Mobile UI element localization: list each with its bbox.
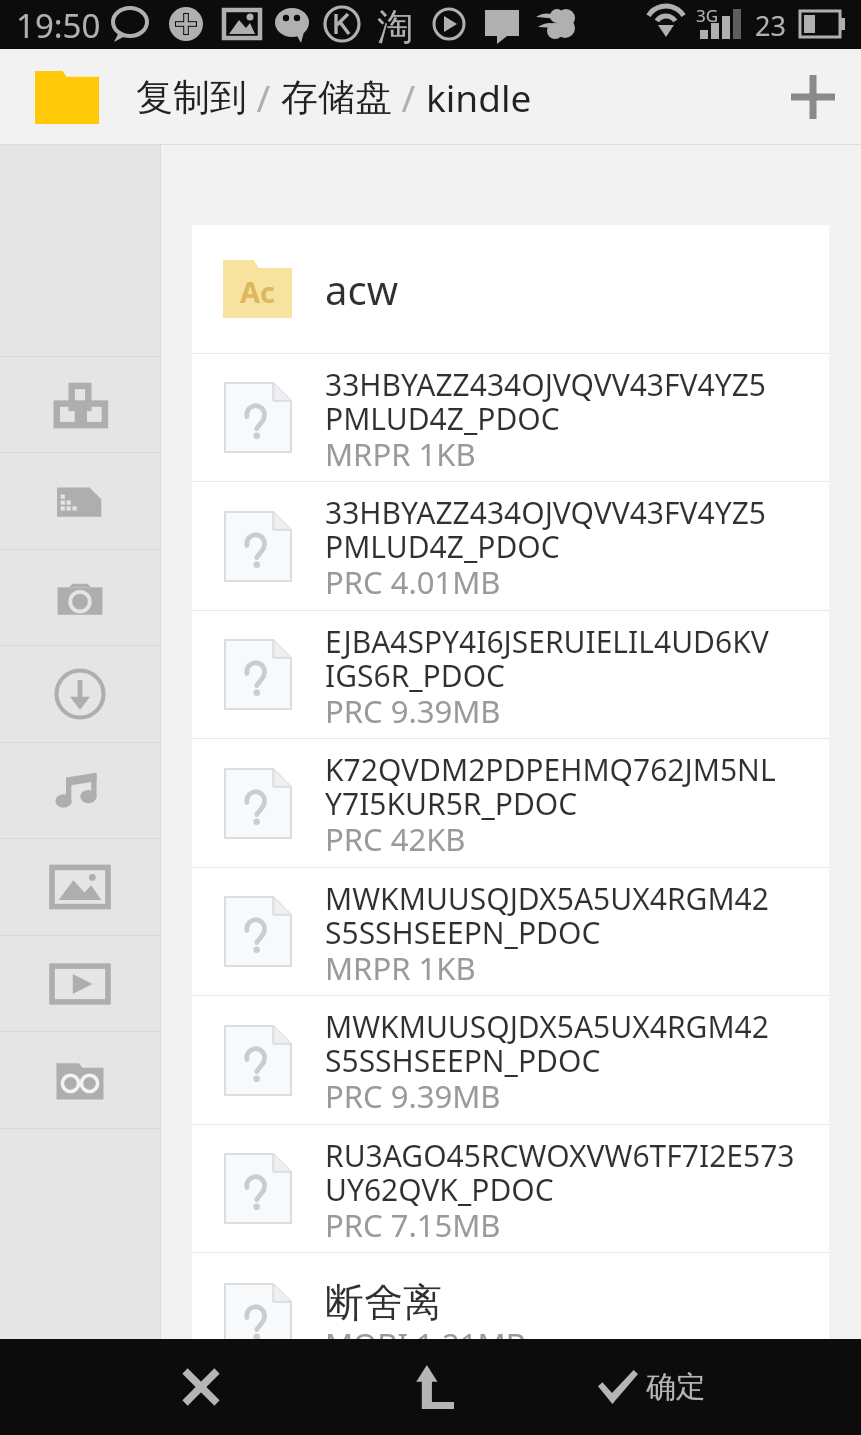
button[interactable]: 断舍离: [192, 1253, 829, 1383]
staticText: kindle: [426, 72, 532, 122]
button[interactable]: Apps: [0, 357, 160, 452]
button[interactable]: RU3AGO45RCWOXVW6TF7I2E573 UY62QVK_PDOC: [192, 1125, 829, 1252]
button[interactable]: 确定: [570, 1339, 770, 1435]
button[interactable]: 33HBYAZZ434OJVQVV43FV4YZ5 PMLUD4Z_PDOC: [192, 354, 829, 481]
button[interactable]: Up one level: [364, 1339, 498, 1435]
button[interactable]: MWKMUUSQJDX5A5UX4RGM42 S5SSHSEEPN_PDOC: [192, 868, 829, 995]
staticText: /: [392, 72, 426, 122]
staticText: PRC 9.39MB: [325, 1075, 501, 1117]
staticText: acw: [325, 262, 399, 316]
staticText: K72QVDM2PDPEHMQ762JM5NL Y7I5KUR5R_PDOC: [325, 749, 776, 823]
staticText: 3G: [696, 4, 719, 27]
staticText: 33HBYAZZ434OJVQVV43FV4YZ5 PMLUD4Z_PDOC: [325, 364, 766, 438]
staticText: 断舍离: [325, 1278, 442, 1327]
button[interactable]: Videos: [0, 936, 160, 1031]
staticText: 淘: [377, 4, 413, 49]
staticText: 复制到: [136, 74, 247, 121]
button[interactable]: Downloads: [0, 646, 160, 742]
button[interactable]: Camera: [0, 550, 160, 645]
button[interactable]: Documents: [0, 1032, 160, 1128]
staticText: 存储盘: [281, 74, 392, 121]
button[interactable]: MWKMUUSQJDX5A5UX4RGM42 S5SSHSEEPN_PDOC: [192, 996, 829, 1124]
staticText: 19:50: [16, 3, 101, 48]
button[interactable]: New folder: [765, 49, 861, 145]
staticText: PRC 4.01MB: [325, 561, 501, 603]
staticText: MWKMUUSQJDX5A5UX4RGM42 S5SSHSEEPN_PDOC: [325, 878, 769, 952]
staticText: MRPR 1KB: [325, 947, 476, 989]
staticText: MRPR 1KB: [325, 433, 476, 475]
staticText: 确定: [646, 1368, 706, 1406]
staticText: 23: [755, 7, 786, 44]
button[interactable]: 33HBYAZZ434OJVQVV43FV4YZ5 PMLUD4Z_PDOC: [192, 482, 829, 610]
staticText: PRC 42KB: [325, 818, 466, 860]
button[interactable]: Music: [0, 743, 160, 838]
button[interactable]: EJBA4SPY4I6JSERUIELIL4UD6KV IGS6R_PDOC: [192, 611, 829, 738]
button[interactable]: K72QVDM2PDPEHMQ762JM5NL Y7I5KUR5R_PDOC: [192, 739, 829, 867]
staticText: /: [247, 72, 281, 122]
staticText: EJBA4SPY4I6JSERUIELIL4UD6KV IGS6R_PDOC: [325, 621, 769, 695]
staticText: PRC 7.15MB: [325, 1204, 501, 1246]
button[interactable]: SD card: [0, 453, 160, 549]
staticText: PRC 9.39MB: [325, 690, 501, 732]
staticText: Ac: [240, 272, 276, 311]
button[interactable]: Cancel: [134, 1339, 268, 1435]
staticText: MWKMUUSQJDX5A5UX4RGM42 S5SSHSEEPN_PDOC: [325, 1006, 769, 1080]
button[interactable]: Ac: [192, 225, 829, 353]
staticText: MOBI 1.21MB: [325, 1323, 526, 1365]
staticText: 33HBYAZZ434OJVQVV43FV4YZ5 PMLUD4Z_PDOC: [325, 492, 766, 566]
staticText: RU3AGO45RCWOXVW6TF7I2E573 UY62QVK_PDOC: [325, 1135, 795, 1209]
button[interactable]: Images: [0, 839, 160, 935]
